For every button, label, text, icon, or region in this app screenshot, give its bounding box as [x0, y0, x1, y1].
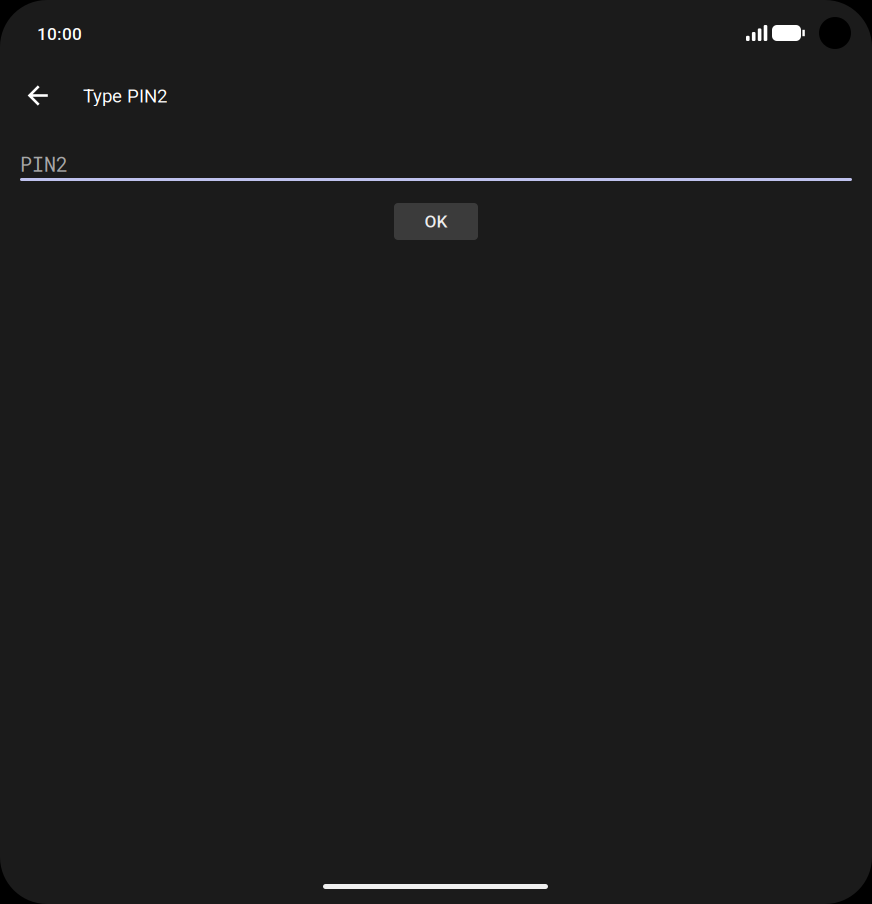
button[interactable]: PIN2	[20, 153, 852, 181]
button[interactable]: OK	[394, 203, 478, 240]
staticText: OK	[424, 211, 447, 232]
button[interactable]: Navigate up	[15, 72, 63, 120]
staticText: 10:00	[37, 24, 82, 44]
button[interactable]: Type PIN2	[83, 85, 483, 107]
staticText: Type PIN2	[83, 85, 167, 107]
staticText: PIN2	[20, 151, 68, 177]
